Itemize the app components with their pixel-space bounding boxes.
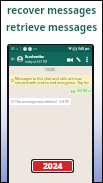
button[interactable]: Back <box>10 54 16 64</box>
staticText: 3:58 PM <box>59 100 69 104</box>
staticText: Hi <box>71 89 75 94</box>
staticText: Sushmita <box>25 54 44 60</box>
button[interactable]: Video call <box>66 56 73 63</box>
staticText: 4G <box>11 47 15 51</box>
staticText: recover messages <box>7 3 97 17</box>
button[interactable]: 2024 <box>31 159 74 173</box>
button[interactable]: More options <box>84 56 90 62</box>
button[interactable]: Call <box>75 56 82 63</box>
staticText: 2024 <box>43 160 63 172</box>
staticText: 3:48 pm <box>78 47 90 51</box>
staticText: Messages to this chat and calls are now … <box>15 76 90 85</box>
staticText: retrieve messages <box>6 20 98 34</box>
staticText: This message was deleted <box>15 99 57 104</box>
staticText: 3:57 PM <box>77 89 87 93</box>
staticText: today at 3:57 PM <box>25 60 47 64</box>
staticText: TODAY <box>45 68 56 72</box>
